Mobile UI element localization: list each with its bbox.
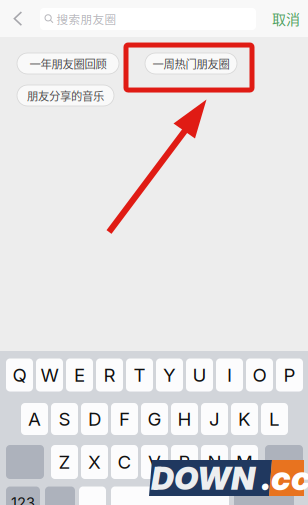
staticText: X bbox=[88, 451, 101, 473]
staticText: 一周热门朋友圈 bbox=[152, 55, 229, 72]
staticText: 一年朋友圈回顾 bbox=[29, 55, 106, 72]
staticText: Z bbox=[58, 451, 70, 473]
button[interactable]: 一年朋友圈回顾 bbox=[17, 53, 119, 74]
button[interactable]: R bbox=[96, 358, 123, 391]
staticText: .cc bbox=[261, 458, 308, 498]
staticText: H bbox=[177, 408, 191, 430]
button[interactable]: V bbox=[141, 445, 168, 479]
staticText: O bbox=[252, 364, 266, 386]
staticText: D bbox=[88, 408, 101, 430]
button[interactable]: M bbox=[231, 445, 258, 479]
button[interactable]: J bbox=[201, 403, 228, 435]
staticText: Y bbox=[163, 364, 176, 386]
staticText: C bbox=[117, 451, 131, 473]
button[interactable]: Next keyboard bbox=[45, 486, 75, 505]
button[interactable]: Shift bbox=[6, 445, 44, 479]
button[interactable]: Y bbox=[156, 358, 183, 391]
staticText: L bbox=[269, 408, 280, 430]
button[interactable]: 搜索朋友圈 bbox=[40, 8, 256, 30]
staticText: J bbox=[209, 408, 220, 430]
staticText: 取消 bbox=[272, 8, 300, 29]
staticText: V bbox=[148, 451, 161, 473]
button[interactable]: K bbox=[231, 403, 258, 435]
button[interactable]: Z bbox=[51, 445, 78, 479]
staticText: I bbox=[227, 364, 232, 386]
button[interactable]: 一周热门朋友圈 bbox=[145, 53, 237, 74]
button[interactable]: X bbox=[81, 445, 108, 479]
button[interactable]: Send bbox=[234, 486, 294, 505]
staticText: M bbox=[236, 451, 253, 473]
button[interactable]: G bbox=[141, 403, 168, 435]
staticText: T bbox=[133, 364, 145, 386]
staticText: DOWN bbox=[151, 459, 255, 497]
staticText: P bbox=[283, 364, 295, 386]
button[interactable]: W bbox=[36, 358, 63, 391]
staticText: U bbox=[192, 364, 206, 386]
button[interactable]: 123 bbox=[6, 486, 40, 505]
staticText: Q bbox=[12, 364, 26, 386]
button[interactable]: I bbox=[216, 358, 243, 391]
staticText: E bbox=[74, 364, 85, 386]
button[interactable]: Delete bbox=[265, 445, 303, 479]
button[interactable]: U bbox=[186, 358, 213, 391]
staticText: R bbox=[103, 364, 115, 386]
staticText: B bbox=[178, 451, 190, 473]
button[interactable]: H bbox=[171, 403, 198, 435]
button[interactable]: 取消 bbox=[268, 0, 304, 37]
button[interactable]: C bbox=[111, 445, 138, 479]
staticText: S bbox=[58, 408, 70, 430]
button[interactable]: Q bbox=[6, 358, 33, 391]
button[interactable]: F bbox=[111, 403, 138, 435]
button[interactable]: N bbox=[201, 445, 228, 479]
staticText: K bbox=[238, 408, 251, 430]
staticText: 朋友分享的音乐 bbox=[27, 87, 104, 104]
button[interactable]: E bbox=[66, 358, 93, 391]
button[interactable]: O bbox=[246, 358, 273, 391]
button[interactable]: 朋友分享的音乐 bbox=[17, 85, 114, 106]
button[interactable]: Space bbox=[111, 486, 229, 505]
button[interactable]: A bbox=[21, 403, 48, 435]
button[interactable]: L bbox=[261, 403, 288, 435]
staticText: A bbox=[28, 408, 41, 430]
staticText: 搜索朋友圈 bbox=[56, 11, 116, 27]
button[interactable]: Dictate bbox=[79, 486, 106, 505]
button[interactable]: Back bbox=[0, 0, 36, 37]
staticText: F bbox=[119, 408, 130, 430]
staticText: N bbox=[207, 451, 221, 473]
staticText: G bbox=[147, 408, 161, 430]
staticText: 123 bbox=[11, 494, 35, 505]
button[interactable]: B bbox=[171, 445, 198, 479]
button[interactable]: S bbox=[51, 403, 78, 435]
button[interactable]: T bbox=[126, 358, 153, 391]
button[interactable]: P bbox=[276, 358, 303, 391]
staticText: W bbox=[40, 364, 58, 386]
button[interactable]: D bbox=[81, 403, 108, 435]
